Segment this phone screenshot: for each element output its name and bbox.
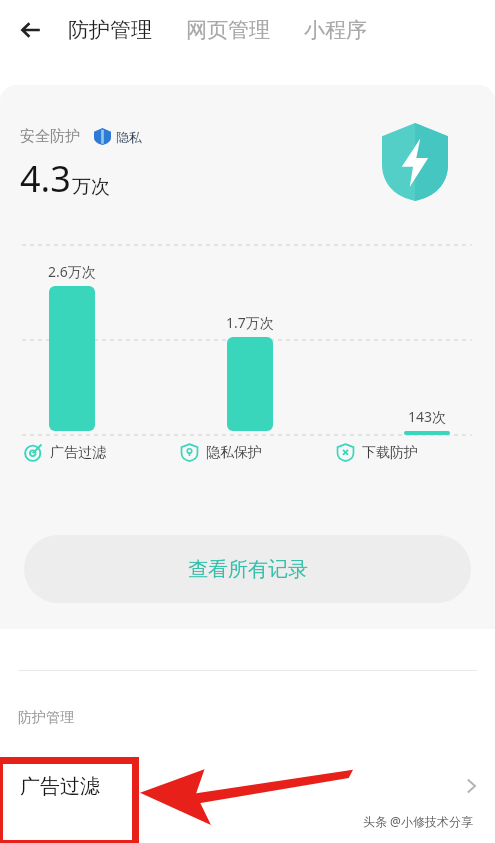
staticText: 头条 @小修技术分享 <box>363 813 473 829</box>
staticText: 隐私 <box>116 129 142 145</box>
staticText: 143次 <box>408 407 447 426</box>
button[interactable]: 广告过滤 <box>0 749 495 823</box>
staticText: 2.6万次 <box>48 262 96 281</box>
staticText: 1.7万次 <box>226 313 274 332</box>
staticText: 防护管理 <box>68 17 152 43</box>
button[interactable]: 下载防护 <box>334 440 420 465</box>
staticText: 广告过滤 <box>20 774 100 799</box>
button[interactable]: 小程序 <box>300 11 371 49</box>
staticText: 小程序 <box>304 17 367 43</box>
staticText: 广告过滤 <box>50 444 106 462</box>
staticText: 安全防护 <box>20 127 80 146</box>
staticText: 下载防护 <box>362 444 418 462</box>
button[interactable]: 广告过滤 <box>22 440 108 465</box>
staticText: 4.3 <box>20 154 71 203</box>
button[interactable]: 查看所有记录 <box>24 535 471 603</box>
staticText: 万次 <box>72 175 110 199</box>
staticText: 隐私保护 <box>206 444 262 462</box>
staticText: 防护管理 <box>18 709 74 727</box>
button[interactable]: 网页管理 <box>182 11 274 49</box>
staticText: 网页管理 <box>186 17 270 43</box>
button[interactable]: Back <box>10 8 54 52</box>
button[interactable]: 防护管理 <box>64 11 156 49</box>
staticText: 查看所有记录 <box>188 557 308 582</box>
button[interactable]: 隐私保护 <box>178 440 264 465</box>
